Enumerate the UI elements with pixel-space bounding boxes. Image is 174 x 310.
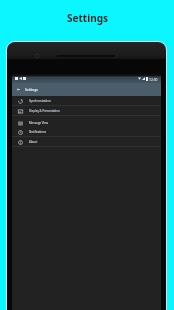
- staticText: About: [29, 140, 38, 144]
- staticText: Display & Presentation: [29, 109, 60, 113]
- button[interactable]: About: [12, 137, 161, 147]
- button[interactable]: Synchronization: [12, 96, 161, 106]
- button[interactable]: Message View: [12, 117, 161, 128]
- button[interactable]: Display & Presentation: [12, 106, 161, 116]
- staticText: Settings: [67, 11, 108, 25]
- staticText: 12:30: [149, 77, 158, 81]
- staticText: Message View: [29, 121, 49, 125]
- staticText: Synchronization: [29, 99, 51, 103]
- button[interactable]: Notifications: [12, 127, 161, 137]
- button[interactable]: Back: [15, 86, 22, 93]
- staticText: Notifications: [29, 130, 47, 134]
- staticText: Settings: [25, 87, 38, 92]
